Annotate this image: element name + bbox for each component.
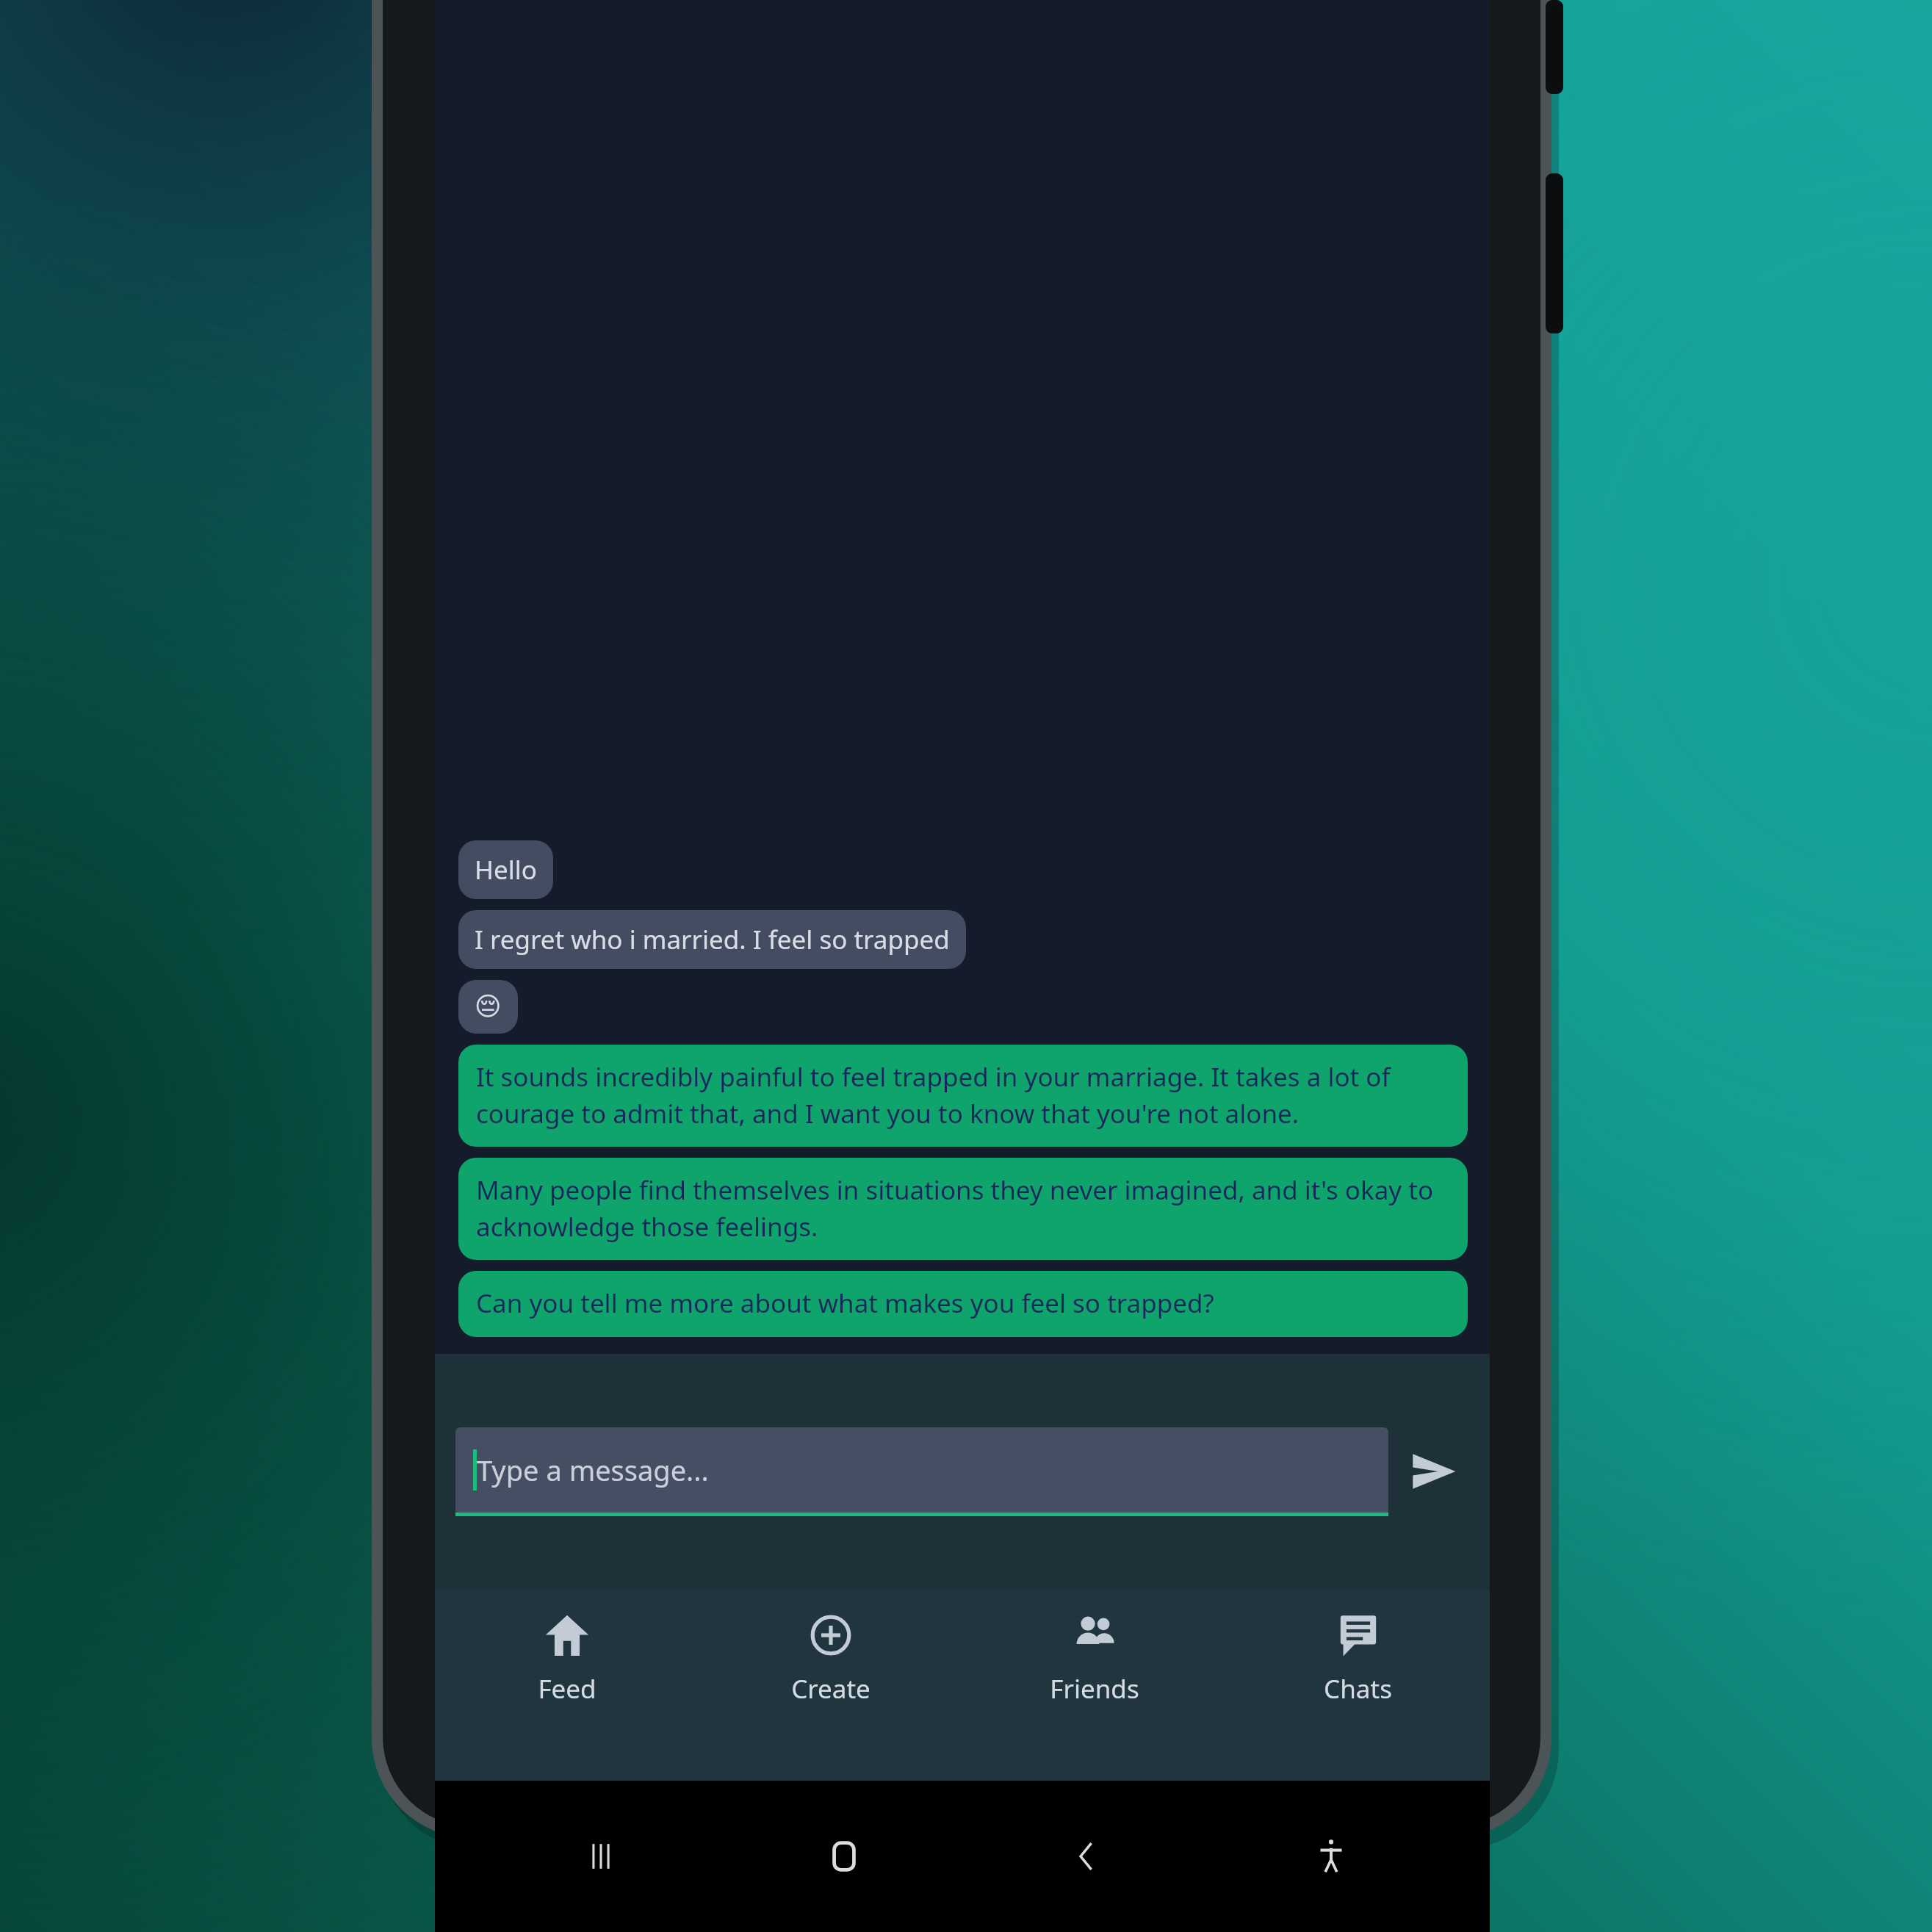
staticText: Many people find themselves in situation… [476,1172,1450,1244]
staticText: 😔 [475,992,502,1022]
staticText: I regret who i married. I feel so trappe… [475,922,950,957]
button[interactable]: Feed [435,1590,699,1781]
staticText: Create [791,1671,871,1706]
button[interactable]: Send [1388,1367,1478,1576]
staticText: It sounds incredibly painful to feel tra… [476,1059,1450,1131]
button[interactable]: Home [722,1781,965,1932]
button[interactable]: Back [965,1781,1209,1932]
button[interactable]: Chats [1226,1590,1490,1781]
button[interactable]: I regret who i married. I feel so trappe… [458,910,966,969]
staticText: Hello [475,852,537,887]
button[interactable]: Recents [479,1781,722,1932]
staticText: Can you tell me more about what makes yo… [476,1286,1214,1321]
staticText: Feed [538,1671,596,1706]
button[interactable]: Hello [458,840,553,899]
button[interactable]: Can you tell me more about what makes yo… [458,1271,1468,1337]
button[interactable]: Friends [962,1590,1226,1781]
button[interactable]: 😔 [458,980,518,1034]
staticText: Chats [1324,1671,1392,1706]
button[interactable]: It sounds incredibly painful to feel tra… [458,1045,1468,1147]
button[interactable]: Create [699,1590,962,1781]
staticText: Friends [1050,1671,1139,1706]
button[interactable]: Type a message... [455,1427,1388,1513]
button[interactable]: Many people find themselves in situation… [458,1158,1468,1260]
button[interactable]: Accessibility [1209,1781,1453,1932]
staticText: Type a message... [477,1451,709,1489]
